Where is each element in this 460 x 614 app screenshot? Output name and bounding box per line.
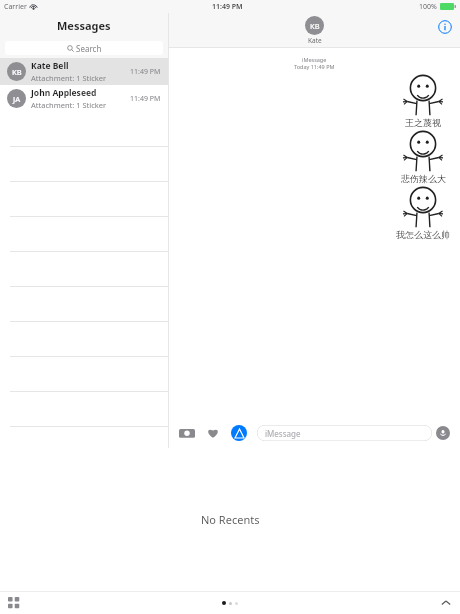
staticText: Attachment: 1 Sticker: [31, 100, 107, 110]
staticText: 悲伤辣么大: [401, 173, 446, 184]
staticText: 100%: [419, 2, 437, 12]
staticText: iMessage: [302, 56, 327, 63]
button[interactable]: Dictate: [436, 426, 450, 440]
button[interactable]: Digital Touch: [205, 425, 221, 441]
staticText: KB: [310, 21, 320, 31]
staticText: Kate Bell: [31, 60, 69, 72]
staticText: No Recents: [201, 512, 260, 527]
button[interactable]: JA: [0, 85, 168, 112]
staticText: iMessage: [265, 428, 301, 439]
staticText: 11:49 PM: [130, 67, 161, 77]
staticText: Attachment: 1 Sticker: [31, 73, 107, 83]
staticText: Search: [76, 43, 102, 54]
button[interactable]: Details: [438, 20, 452, 34]
staticText: JA: [13, 94, 21, 104]
staticText: Messages: [57, 18, 111, 33]
staticText: Carrier: [4, 2, 27, 12]
button[interactable]: Show Dock: [440, 597, 452, 609]
staticText: Today 11:49 PM: [294, 63, 335, 70]
staticText: 王之蔑视: [405, 117, 441, 128]
button[interactable]: App Switcher: [8, 597, 20, 609]
staticText: John Appleseed: [31, 87, 97, 99]
button[interactable]: iMessage: [257, 425, 432, 441]
staticText: 11:49 PM: [212, 2, 243, 12]
button[interactable]: KB: [0, 58, 168, 85]
staticText: Kate: [308, 36, 322, 45]
button[interactable]: KB: [305, 16, 324, 35]
staticText: 我怎么这么帅: [396, 229, 450, 240]
button[interactable]: Camera: [179, 425, 195, 441]
staticText: 11:49 PM: [130, 94, 161, 104]
button[interactable]: Search: [5, 41, 163, 55]
button[interactable]: App Store: [231, 425, 247, 441]
staticText: KB: [12, 67, 22, 77]
